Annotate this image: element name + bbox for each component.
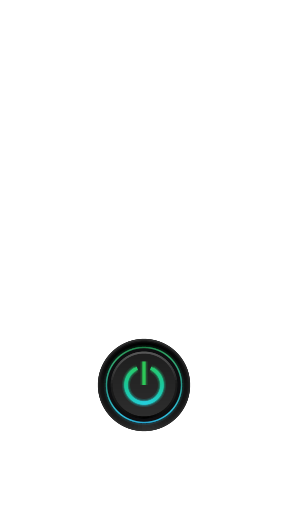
- button[interactable]: Power: [98, 339, 190, 431]
